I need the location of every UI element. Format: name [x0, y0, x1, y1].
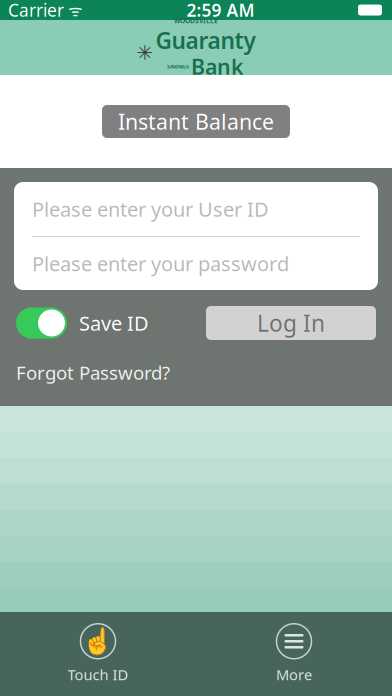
staticText: Log In	[257, 308, 325, 338]
staticText: Carrier	[8, 0, 64, 21]
button[interactable]: Instant Balance	[102, 105, 290, 138]
staticText: WOODSVILLE	[174, 16, 218, 25]
staticText: 2:59 AM	[186, 0, 254, 21]
staticText: ☝	[82, 627, 114, 656]
staticText: SAVINGS	[167, 63, 189, 70]
staticText: ✳	[136, 42, 153, 64]
staticText: Instant Balance	[118, 107, 274, 136]
staticText: Touch ID	[67, 665, 128, 684]
staticText: Guaranty	[155, 25, 255, 55]
staticText: Please enter your password	[32, 250, 289, 277]
button[interactable]: ☝	[0, 612, 196, 696]
button[interactable]: Forgot Password?	[16, 360, 170, 385]
button[interactable]: More	[196, 612, 392, 696]
staticText: Please enter your User ID	[32, 196, 269, 222]
staticText: More	[276, 665, 312, 684]
staticText: Forgot Password?	[16, 360, 170, 385]
staticText: Bank	[191, 52, 244, 81]
button[interactable]: Log In	[206, 306, 376, 340]
button[interactable]: Save ID	[16, 307, 149, 338]
staticText: Save ID	[79, 310, 149, 336]
staticText: ᯤ	[64, 0, 83, 21]
